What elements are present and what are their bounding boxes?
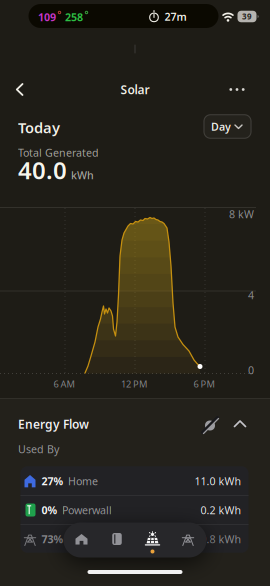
- staticText: 258: [65, 10, 83, 24]
- staticText: 0%: [41, 503, 57, 517]
- staticText: Total Generated: [18, 145, 99, 160]
- button[interactable]: Solar: [145, 531, 160, 545]
- button[interactable]: Hide values: [201, 416, 219, 434]
- staticText: Today: [18, 118, 60, 137]
- staticText: Powerwall: [62, 503, 112, 517]
- button[interactable]: Home: [75, 533, 87, 544]
- staticText: 6 PM: [193, 378, 214, 390]
- button[interactable]: Day range selector: [203, 114, 251, 139]
- button[interactable]: 0%: [20, 496, 248, 524]
- staticText: 39: [242, 11, 252, 22]
- staticText: Used By: [18, 442, 59, 456]
- staticText: 4: [248, 288, 254, 302]
- staticText: Grid: [68, 532, 90, 546]
- button[interactable]: Grid: [182, 532, 194, 545]
- staticText: 27%: [41, 474, 63, 488]
- staticText: 0: [248, 363, 254, 377]
- staticText: 8 kW: [229, 207, 254, 221]
- staticText: 27m: [164, 9, 186, 24]
- staticText: Day: [211, 120, 231, 134]
- button[interactable]: Powerwall: [111, 532, 123, 546]
- staticText: 6 AM: [53, 378, 74, 390]
- staticText: Solar: [120, 81, 149, 97]
- button[interactable]: 73%: [20, 525, 248, 553]
- staticText: 0.2 kWh: [200, 503, 241, 517]
- button[interactable]: 27%: [20, 467, 248, 495]
- staticText: kWh: [71, 168, 94, 182]
- staticText: 40.0: [18, 154, 67, 186]
- button[interactable]: More: [224, 81, 250, 97]
- button[interactable]: Back: [15, 83, 25, 96]
- staticText: 29.8 kWh: [194, 532, 241, 546]
- staticText: 12 PM: [121, 378, 147, 390]
- staticText: 109: [38, 10, 56, 24]
- staticText: Energy Flow: [18, 416, 89, 432]
- staticText: Home: [68, 474, 98, 488]
- staticText: 11.0 kWh: [194, 474, 241, 488]
- button[interactable]: Collapse: [233, 418, 247, 430]
- staticText: 73%: [41, 532, 63, 546]
